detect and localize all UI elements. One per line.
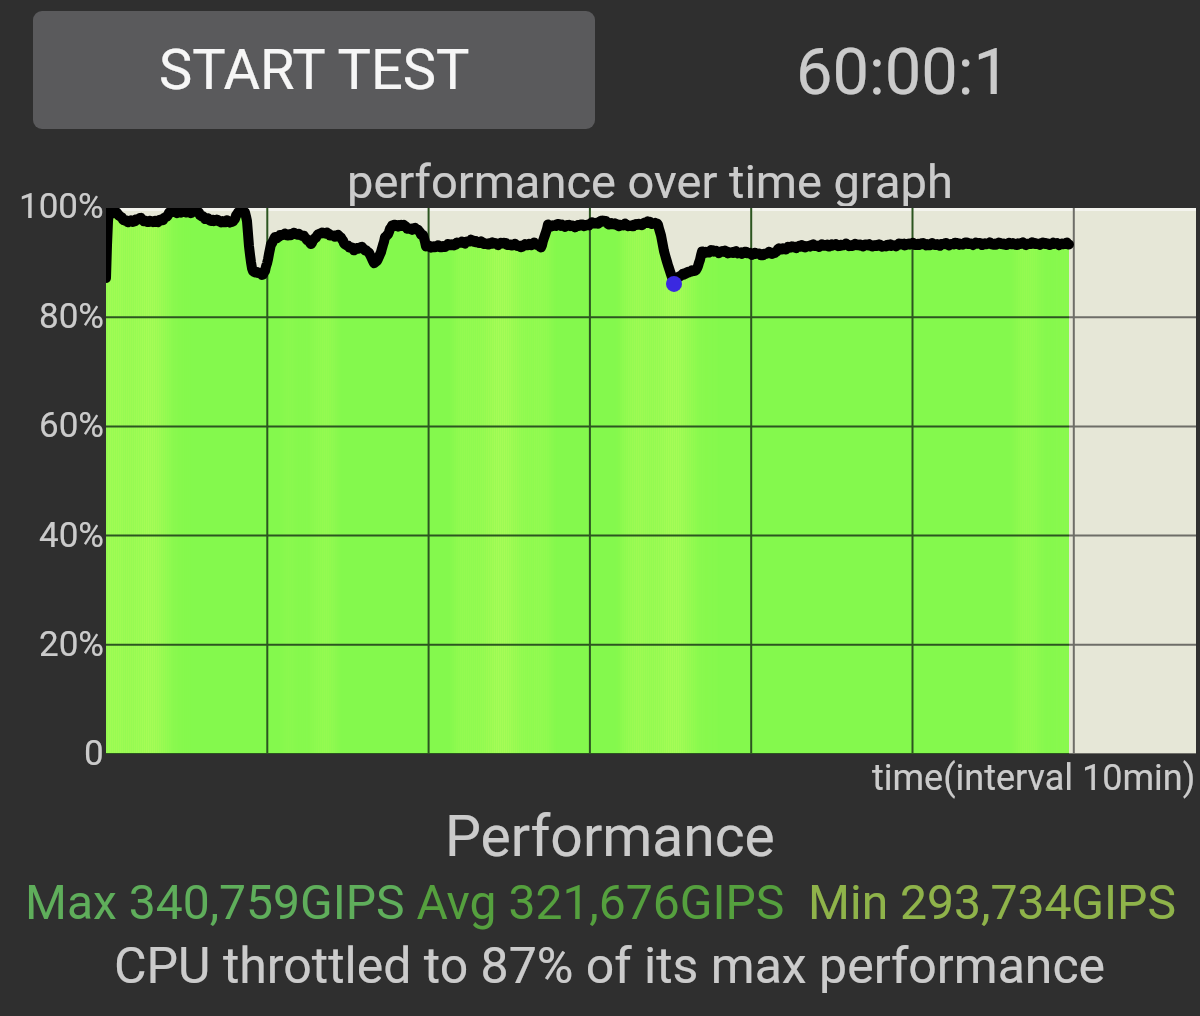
staticText: 20%	[39, 624, 104, 665]
staticText: 60:00:1	[796, 34, 1011, 110]
staticText: Max 340,759GIPS Avg 321,676GIPS Min 293,…	[25, 874, 1176, 930]
staticText: 100%	[19, 186, 104, 227]
staticText: 0	[84, 733, 104, 774]
staticText: 60%	[39, 405, 104, 446]
staticText: CPU throttled to 87% of its max performa…	[114, 937, 1106, 995]
staticText: time(interval 10min)	[872, 757, 1196, 799]
other: Performance over time graph	[106, 208, 1196, 754]
staticText: performance over time graph	[347, 154, 953, 206]
staticText: 80%	[39, 296, 104, 337]
staticText: Performance	[445, 803, 775, 861]
staticText: 40%	[39, 515, 104, 556]
button[interactable]: START TEST	[33, 11, 595, 129]
staticText: START TEST	[159, 37, 470, 103]
